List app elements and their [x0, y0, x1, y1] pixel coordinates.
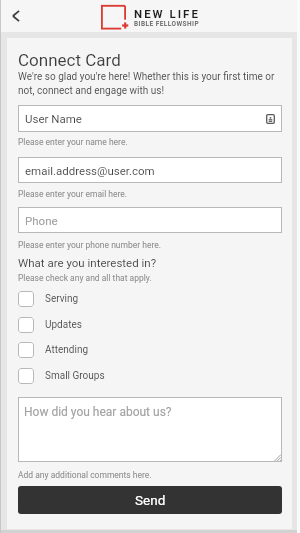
- staticText: BIBLE FELLOWSHIP: [134, 20, 200, 28]
- staticText: Small Groups: [45, 370, 105, 382]
- staticText: Please enter your name here.: [18, 137, 128, 147]
- button[interactable]: User Name: [18, 105, 282, 132]
- staticText: Attending: [45, 344, 89, 356]
- staticText: email.address@user.com: [25, 164, 155, 177]
- staticText: Add any additional comments here.: [18, 470, 152, 480]
- staticText: Please check any and all that apply.: [18, 273, 152, 283]
- button[interactable]: How did you hear about us?: [18, 397, 282, 462]
- staticText: What are you interested in?: [18, 256, 157, 269]
- staticText: Please enter your email here.: [18, 189, 128, 199]
- button[interactable]: Send: [18, 486, 282, 514]
- staticText: User Name: [25, 112, 82, 125]
- staticText: Send: [135, 492, 166, 508]
- staticText: Phone: [25, 214, 58, 227]
- staticText: Connect Card: [18, 50, 121, 70]
- button[interactable]: Back: [0, 0, 32, 32]
- staticText: Please enter your phone number here.: [18, 240, 161, 250]
- button[interactable]: Small Groups: [18, 368, 282, 384]
- button[interactable]: Phone: [18, 207, 282, 233]
- staticText: We're so glad you're here! Whether this …: [18, 71, 282, 96]
- button[interactable]: Updates: [18, 317, 282, 333]
- button[interactable]: Attending: [18, 342, 282, 358]
- staticText: NEW LIFE: [134, 7, 200, 20]
- button[interactable]: Serving: [18, 291, 282, 307]
- staticText: Serving: [45, 293, 79, 305]
- staticText: Updates: [45, 319, 82, 331]
- button[interactable]: email.address@user.com: [18, 157, 282, 183]
- staticText: How did you hear about us?: [24, 405, 172, 419]
